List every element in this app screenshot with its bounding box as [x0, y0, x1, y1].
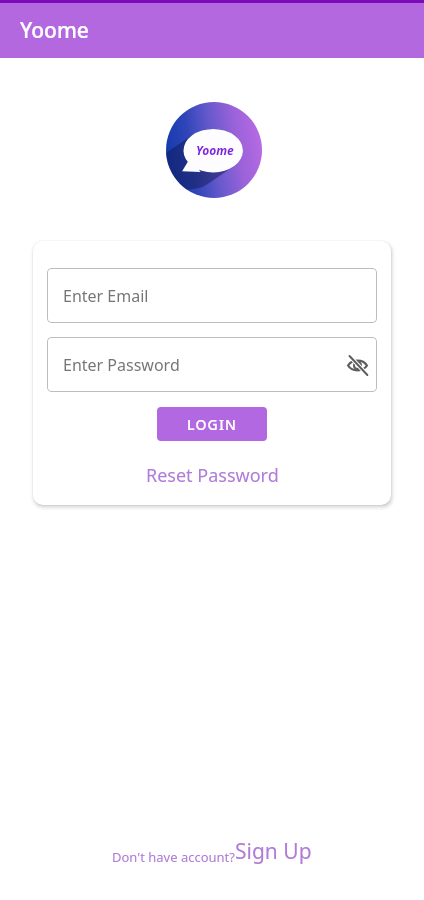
button[interactable]: Enter Password — [47, 337, 377, 392]
button[interactable]: Enter Email — [47, 268, 377, 323]
staticText: Enter Email — [63, 285, 149, 307]
button[interactable]: Reset Password — [140, 461, 285, 490]
staticText: Don't have account? — [112, 848, 235, 866]
button[interactable]: LOGIN — [157, 407, 267, 441]
staticText: Yoome — [196, 142, 234, 158]
staticText: LOGIN — [187, 415, 238, 434]
button[interactable]: Sign Up — [235, 837, 312, 866]
staticText: Yoome — [20, 16, 89, 45]
staticText: Enter Password — [63, 354, 180, 376]
button[interactable]: Toggle password visibility — [341, 349, 373, 381]
